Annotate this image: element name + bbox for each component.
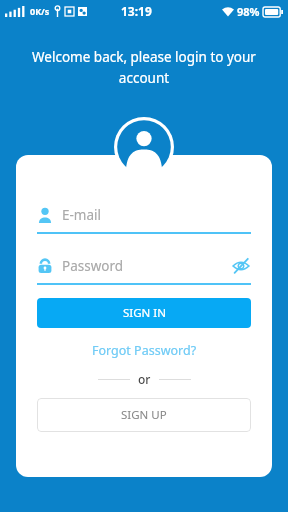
staticText: Forgot Password? [92, 342, 197, 359]
button[interactable]: Toggle password visibility [231, 256, 251, 276]
button[interactable]: SIGN UP [37, 398, 251, 432]
staticText: Welcome back, please login to your accou… [20, 48, 268, 87]
staticText: SIGN UP [121, 407, 167, 423]
staticText: 98% [237, 4, 260, 19]
staticText: SIGN IN [123, 305, 166, 321]
button[interactable]: Password [37, 254, 251, 285]
button[interactable]: Forgot Password? [37, 339, 251, 361]
staticText: E-mail [62, 206, 102, 224]
staticText: 0K/s [30, 5, 50, 17]
staticText: or [138, 371, 151, 387]
button[interactable]: E-mail [37, 203, 251, 234]
button[interactable]: SIGN IN [37, 298, 251, 328]
staticText: Password [62, 257, 124, 275]
staticText: 13:19 [121, 3, 152, 19]
